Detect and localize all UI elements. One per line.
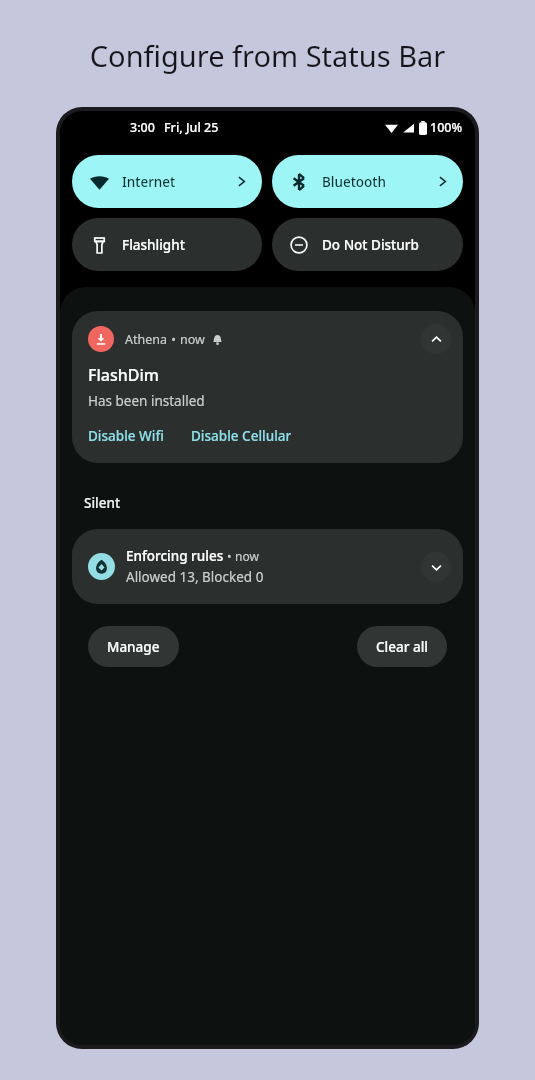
staticText: 100%: [430, 119, 463, 136]
button[interactable]: Disable Wifi: [88, 427, 164, 445]
button[interactable]: Do Not Disturb: [272, 218, 463, 271]
staticText: now: [235, 548, 259, 564]
staticText: Fri, Jul 25: [164, 119, 219, 136]
staticText: Has been installed: [88, 392, 205, 410]
button[interactable]: Disable Cellular: [191, 427, 292, 445]
staticText: Athena: [125, 331, 168, 348]
staticText: Configure from Status Bar: [0, 36, 535, 75]
button[interactable]: Enforcing rules: [72, 529, 463, 604]
staticText: Internet: [122, 173, 235, 191]
button[interactable]: Athena: [72, 311, 463, 463]
button[interactable]: Manage: [88, 626, 179, 667]
staticText: Allowed 13, Blocked 0: [126, 568, 264, 586]
staticText: Disable Cellular: [191, 427, 292, 445]
staticText: Disable Wifi: [88, 427, 164, 445]
button[interactable]: Collapse notification: [421, 324, 451, 354]
staticText: Manage: [107, 638, 160, 656]
staticText: now: [180, 331, 205, 348]
staticText: •: [168, 331, 180, 348]
button[interactable]: Clear all: [357, 626, 447, 667]
staticText: Silent: [84, 494, 121, 512]
staticText: •: [224, 548, 235, 564]
button[interactable]: Flashlight: [72, 218, 262, 271]
button[interactable]: Bluetooth: [272, 155, 463, 208]
staticText: 3:00: [130, 119, 155, 136]
button[interactable]: Internet: [72, 155, 262, 208]
staticText: Clear all: [376, 638, 428, 656]
staticText: Do Not Disturb: [322, 236, 449, 254]
staticText: Enforcing rules: [126, 547, 224, 565]
staticText: Bluetooth: [322, 173, 436, 191]
staticText: Flashlight: [122, 236, 248, 254]
staticText: FlashDim: [88, 364, 159, 386]
button[interactable]: Expand notification: [421, 552, 451, 582]
